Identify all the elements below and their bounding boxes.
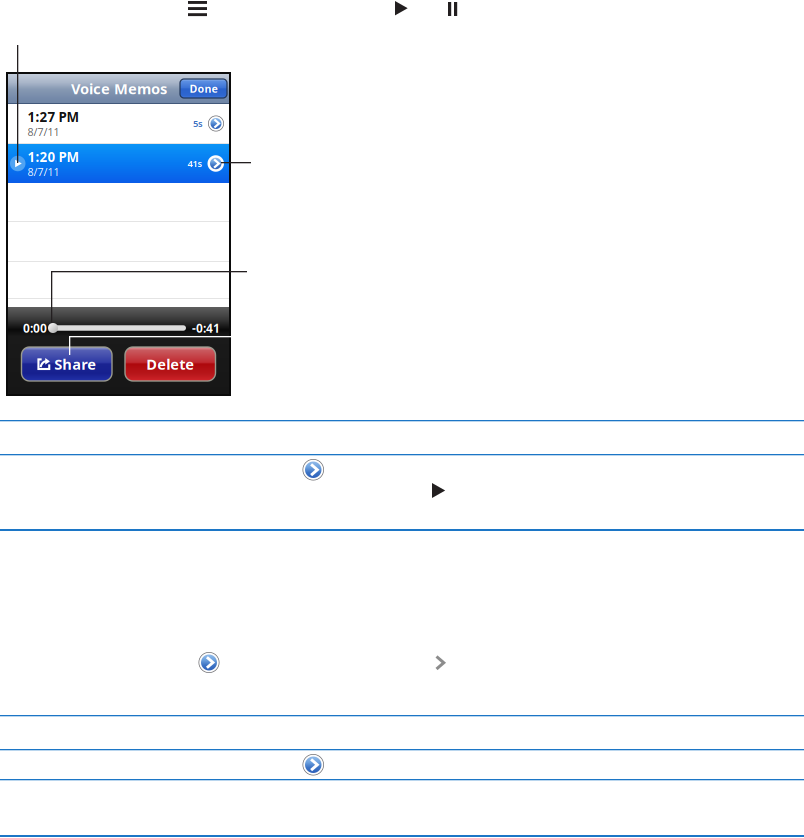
staticText: Share xyxy=(54,354,96,374)
staticText: Done xyxy=(189,81,217,96)
button[interactable]: 1:20 PM xyxy=(8,144,229,183)
staticText: 8/7/11 xyxy=(27,165,59,179)
staticText: Voice Memos xyxy=(71,79,167,98)
button[interactable]: Menu xyxy=(188,1,207,16)
staticText: 0:00 xyxy=(23,320,47,336)
staticText: -0:41 xyxy=(192,320,220,336)
staticText: 1:20 PM xyxy=(27,148,79,166)
button[interactable]: Share xyxy=(21,347,112,381)
button[interactable]: Delete xyxy=(125,347,215,381)
staticText: 41s xyxy=(187,157,202,170)
staticText: Delete xyxy=(146,354,194,374)
staticText: 1:27 PM xyxy=(27,108,79,126)
staticText: 5s xyxy=(193,117,203,130)
staticText: 8/7/11 xyxy=(27,125,59,139)
button[interactable]: 1:27 PM xyxy=(8,104,229,143)
button[interactable]: Done xyxy=(180,79,227,98)
